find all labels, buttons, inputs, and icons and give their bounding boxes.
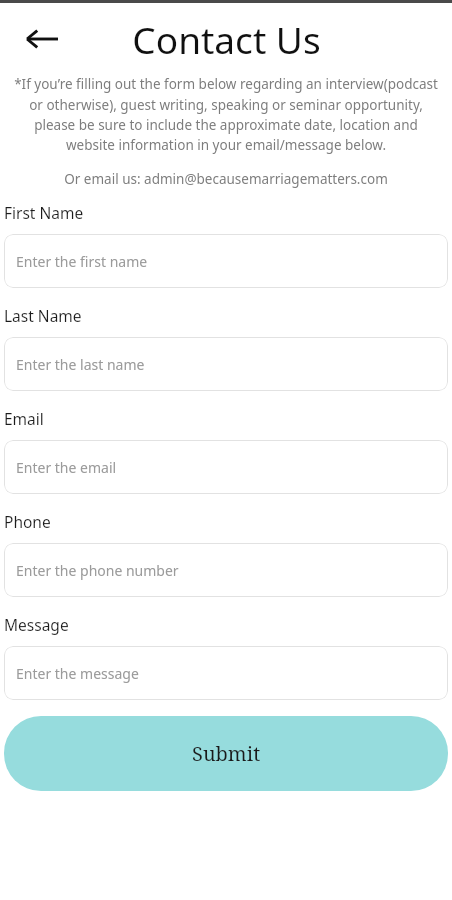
staticText: Email [4, 408, 44, 429]
button[interactable]: Enter the email [4, 440, 448, 494]
staticText: Enter the phone number [16, 561, 179, 580]
button[interactable]: Enter the first name [4, 234, 448, 288]
staticText: Enter the first name [16, 252, 148, 271]
button[interactable]: Back [16, 13, 68, 65]
staticText: Enter the email [16, 458, 117, 477]
button[interactable]: Enter the phone number [4, 543, 448, 597]
staticText: Submit [192, 740, 261, 767]
staticText: Last Name [4, 305, 82, 326]
button[interactable]: Enter the message [4, 646, 448, 700]
button[interactable]: Submit [4, 716, 448, 791]
staticText: *If you’re filling out the form below re… [8, 75, 444, 154]
staticText: Or email us: admin@becausemarriagematter… [6, 170, 446, 188]
button[interactable]: Enter the last name [4, 337, 448, 391]
staticText: Enter the message [16, 664, 139, 683]
staticText: Message [4, 614, 69, 635]
staticText: Contact Us [132, 14, 321, 64]
staticText: Phone [4, 511, 51, 532]
staticText: Enter the last name [16, 355, 145, 374]
staticText: First Name [4, 202, 84, 223]
